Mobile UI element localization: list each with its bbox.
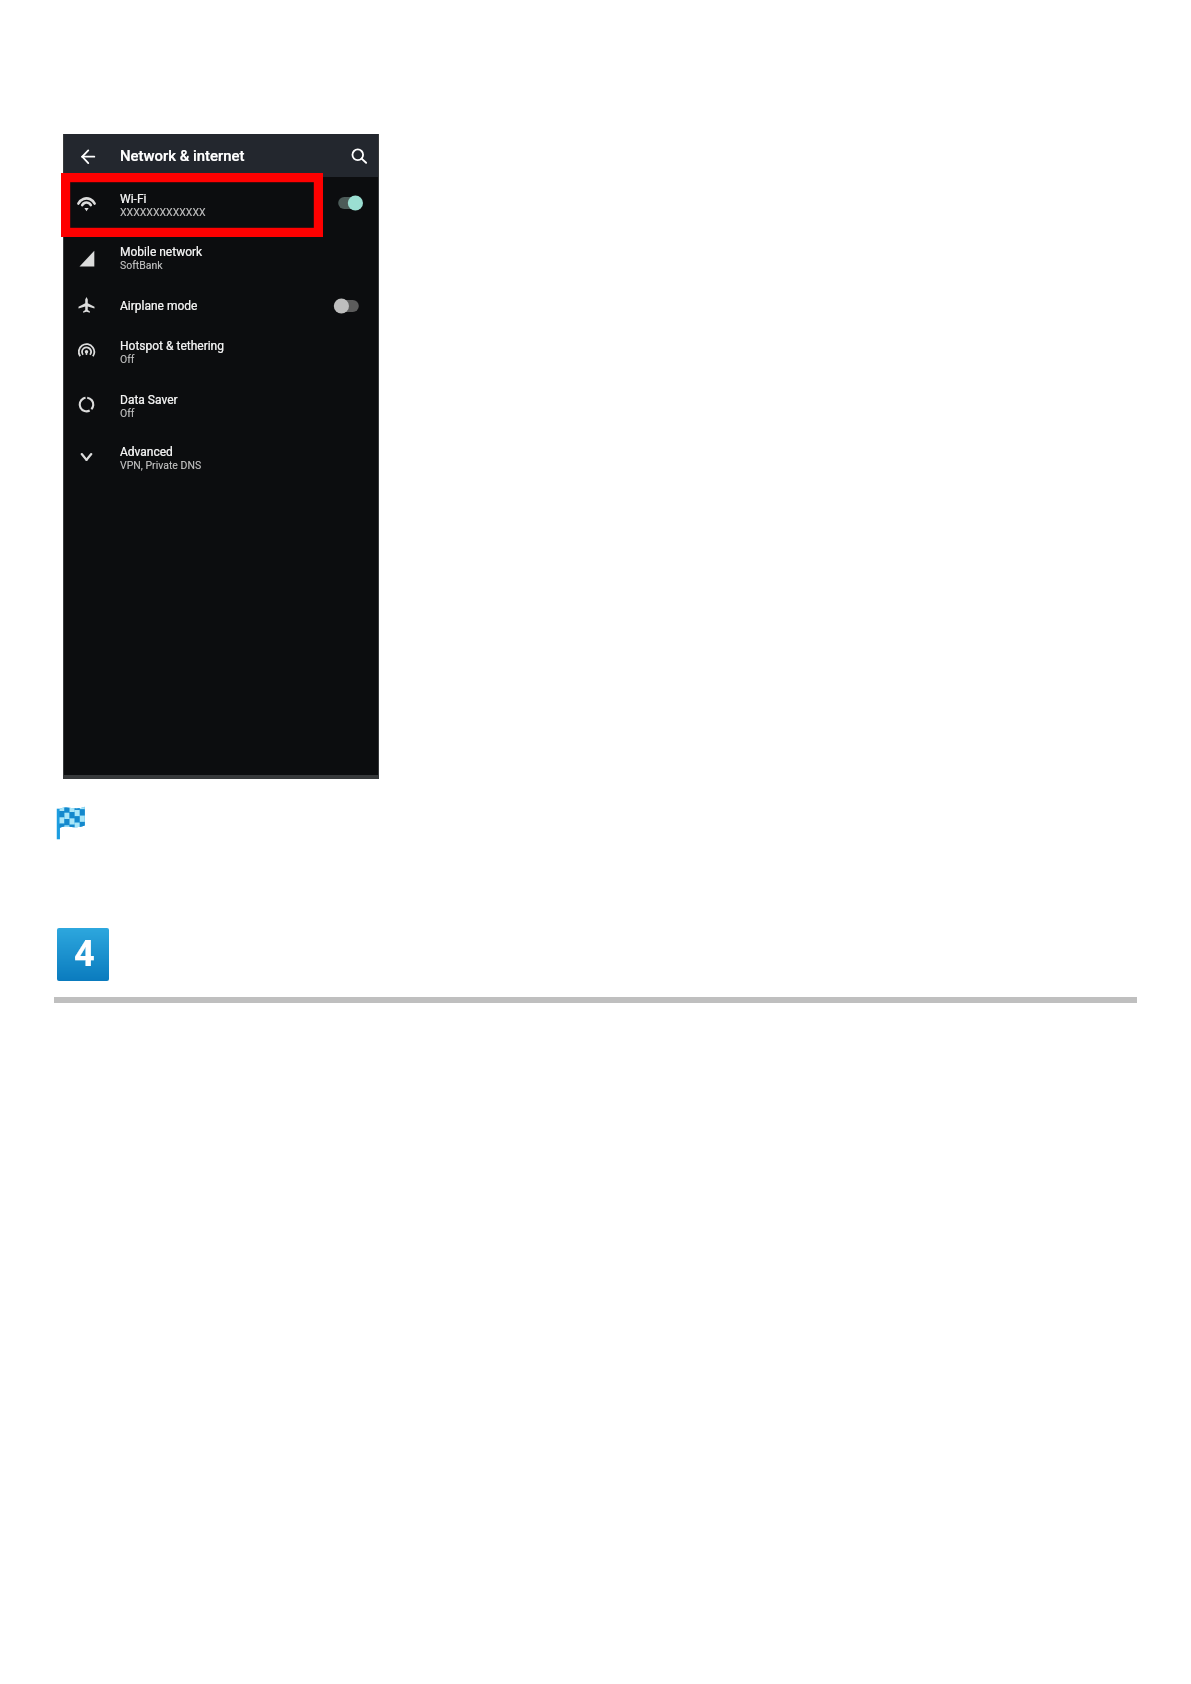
staticText: Off — [120, 407, 135, 419]
staticText: 4 — [74, 933, 95, 975]
button[interactable]: Search — [343, 134, 375, 177]
staticText: Network & internet — [120, 147, 245, 164]
staticText: Wi-Fi — [120, 192, 147, 206]
staticText: Advanced — [120, 445, 173, 459]
button[interactable]: Airplane mode — [64, 291, 378, 325]
button[interactable]: Back — [72, 134, 104, 177]
staticText: XXXXXXXXXXXXX — [120, 206, 206, 218]
button[interactable]: Advanced — [64, 437, 378, 483]
staticText: Mobile network — [120, 245, 203, 259]
staticText: SoftBank — [120, 259, 163, 271]
staticText: Off — [120, 353, 135, 365]
button[interactable]: Wi-Fi — [64, 184, 378, 230]
button[interactable]: Mobile network — [64, 237, 378, 283]
button[interactable]: Data Saver — [64, 385, 378, 431]
staticText: Airplane mode — [120, 299, 198, 313]
staticText: VPN, Private DNS — [120, 459, 202, 471]
staticText: Data Saver — [120, 393, 178, 407]
staticText: Hotspot & tethering — [120, 339, 224, 353]
button[interactable]: Hotspot & tethering — [64, 331, 378, 377]
